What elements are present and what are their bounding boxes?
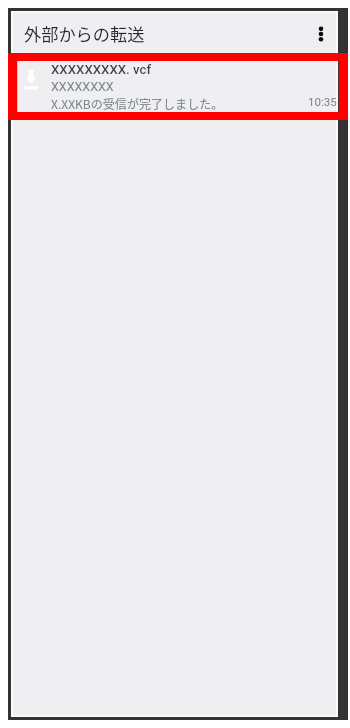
staticText: XXXXXXXX [51, 79, 114, 94]
staticText: 外部からの転送 [24, 21, 145, 46]
button[interactable]: More options [301, 11, 339, 53]
button[interactable]: XXXXXXXXX. vcf [11, 61, 339, 112]
staticText: XXXXXXXXX. vcf [51, 62, 152, 77]
staticText: 10:35 [308, 95, 337, 108]
staticText: X.XXKBの受信が完了しました。 [51, 95, 224, 112]
